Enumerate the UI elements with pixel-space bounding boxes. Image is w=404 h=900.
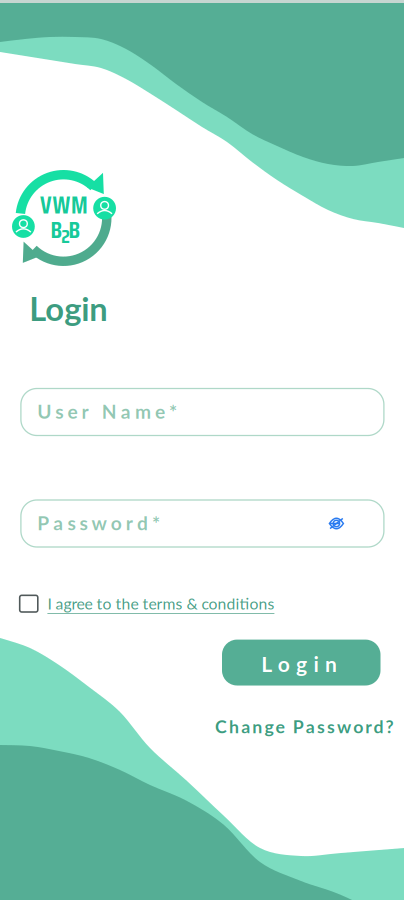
staticText: 2 [61, 221, 81, 253]
staticText: User Name* [37, 400, 297, 431]
button[interactable]: Show password [322, 509, 350, 537]
button[interactable]: Change Password? [215, 716, 404, 745]
button[interactable]: I agree to the terms & conditions [20, 594, 278, 618]
staticText: Password* [37, 511, 297, 543]
staticText: B [50, 211, 70, 250]
staticText: B [68, 211, 88, 250]
staticText: VWM [40, 186, 110, 226]
button[interactable]: Login [222, 640, 380, 685]
staticText: Login [29, 289, 169, 343]
staticText: Login [261, 651, 381, 686]
staticText: I agree to the terms & conditions [47, 594, 297, 620]
staticText: Change Password? [215, 716, 404, 745]
